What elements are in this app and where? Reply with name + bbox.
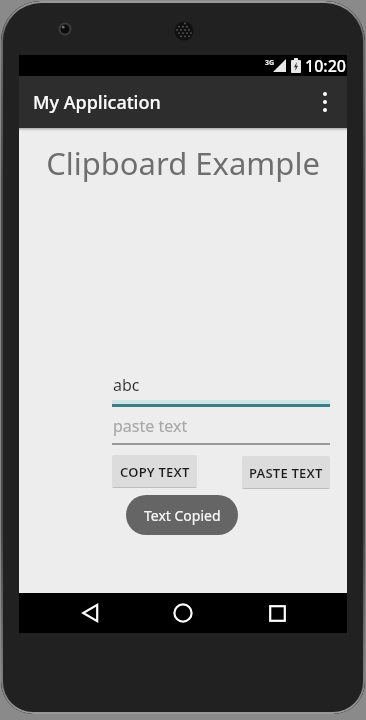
button[interactable]	[70, 593, 110, 633]
staticText: Clipboard Example	[19, 142, 347, 184]
button[interactable]	[305, 82, 345, 122]
staticText: Text Copied	[144, 506, 221, 525]
staticText: 10:20	[305, 55, 346, 76]
button[interactable]: PASTE TEXT	[242, 456, 330, 489]
button[interactable]	[163, 593, 203, 633]
staticText: COPY TEXT	[120, 463, 190, 481]
staticText: 3G	[265, 58, 275, 68]
staticText: PASTE TEXT	[249, 464, 323, 482]
staticText: paste text	[113, 415, 188, 437]
staticText: My Application	[33, 90, 161, 115]
button[interactable]	[257, 593, 297, 633]
button[interactable]: COPY TEXT	[112, 455, 197, 488]
staticText: abc	[113, 374, 140, 396]
button[interactable]: Text Copied	[126, 495, 238, 535]
